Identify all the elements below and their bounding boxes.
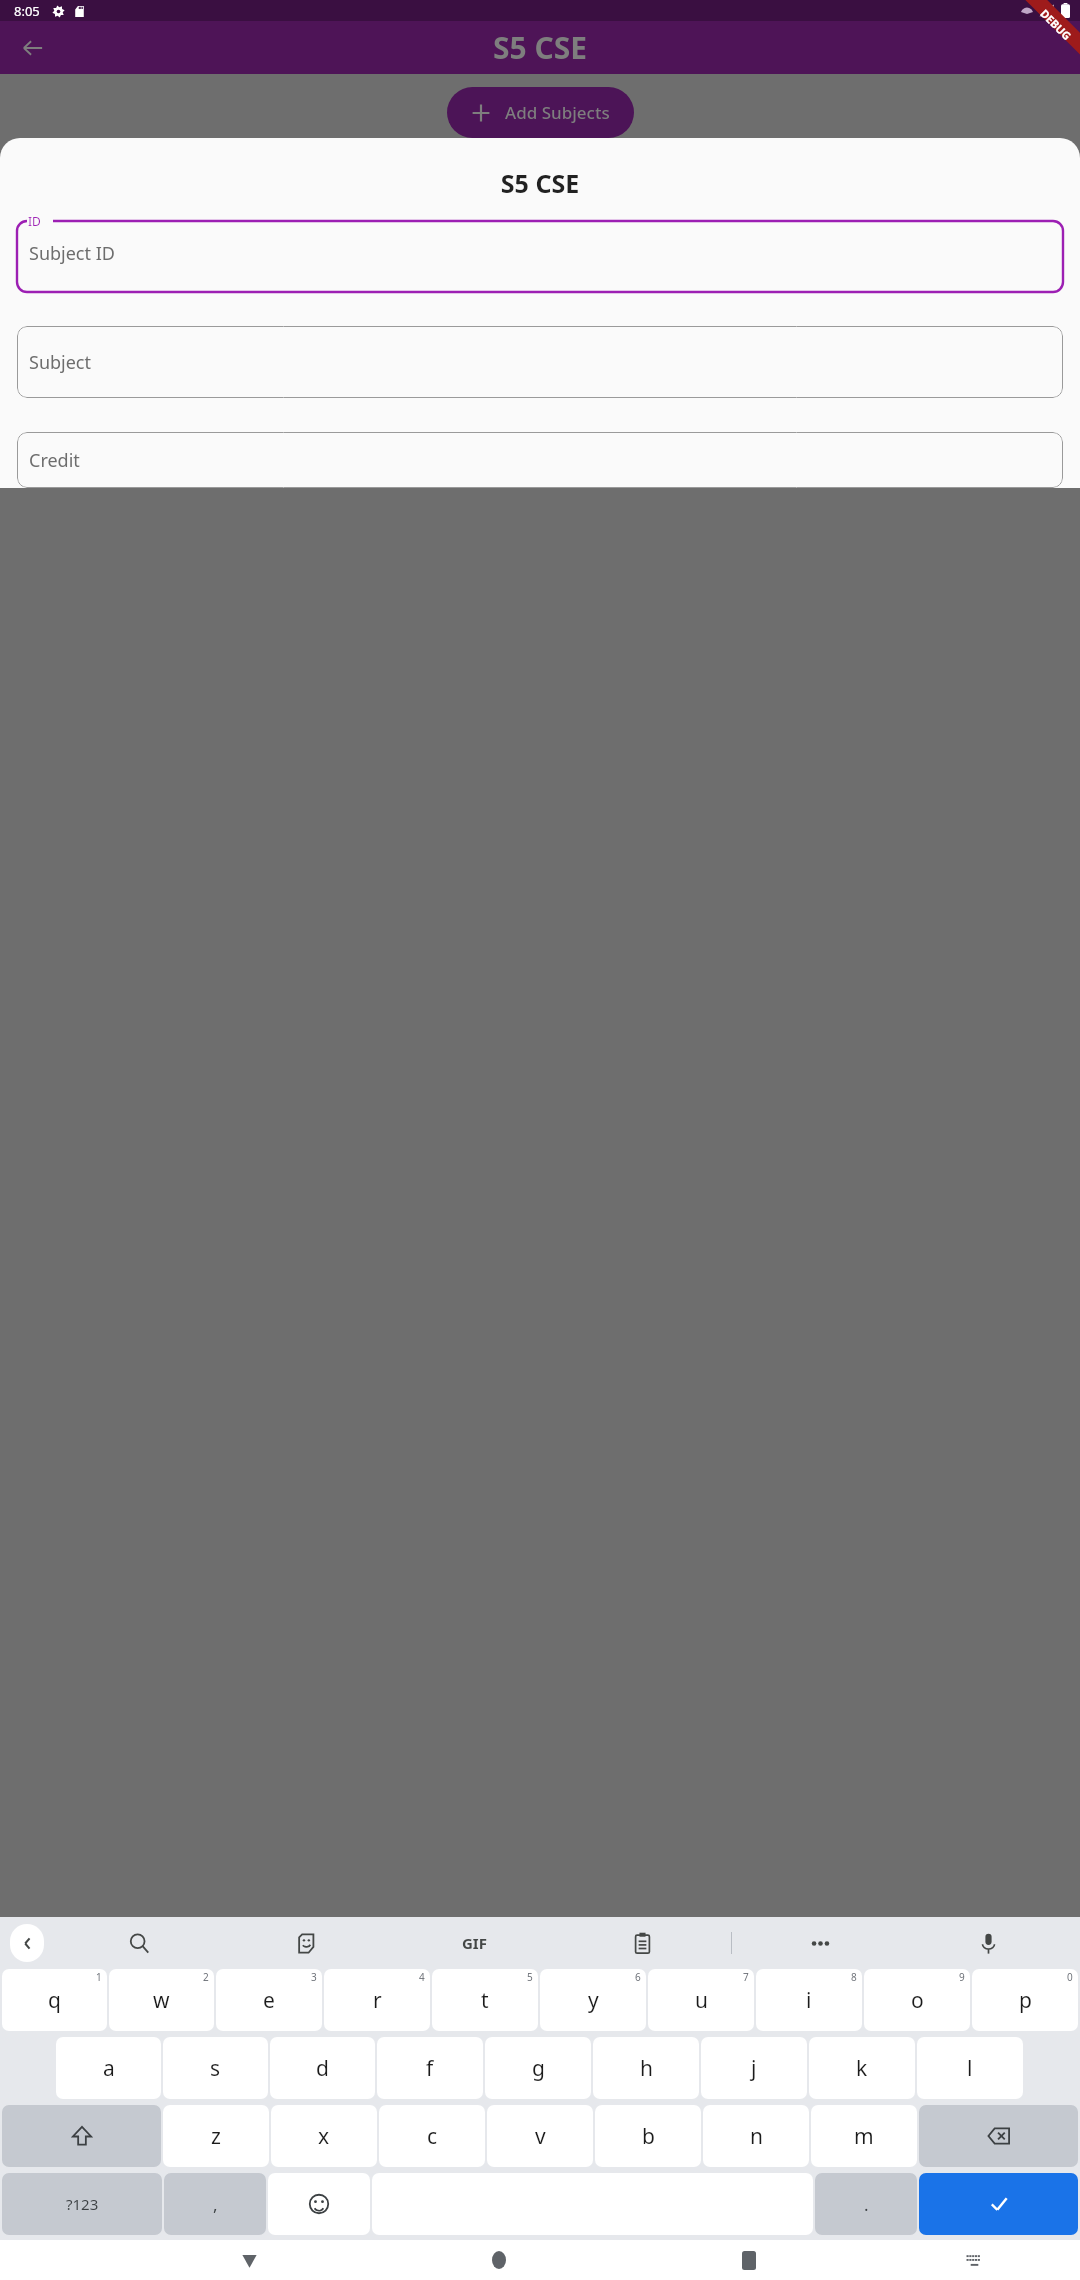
staticText: o — [911, 1986, 924, 2015]
staticText: k — [856, 2054, 868, 2083]
button[interactable]: ID — [17, 214, 1063, 292]
staticText: 8:05 — [14, 2, 40, 20]
button[interactable]: w — [109, 1969, 214, 2031]
button[interactable]: Voice input — [904, 1917, 1072, 1969]
button[interactable]: Switch keyboard — [874, 2240, 1074, 2280]
button[interactable]: a — [56, 2037, 161, 2099]
button[interactable]: p — [972, 1969, 1078, 2031]
button[interactable]: r — [324, 1969, 430, 2031]
button[interactable]: m — [811, 2105, 917, 2167]
button[interactable]: Add Subjects — [447, 87, 634, 138]
button[interactable]: Clipboard — [558, 1917, 726, 1969]
staticText: y — [588, 1986, 599, 2015]
button[interactable]: q — [2, 1969, 107, 2031]
staticText: 4 — [419, 1970, 425, 1984]
button[interactable]: Stickers — [223, 1917, 390, 1969]
button[interactable]: , — [164, 2173, 266, 2235]
staticText: s — [210, 2054, 221, 2083]
button[interactable]: l — [917, 2037, 1023, 2099]
button[interactable]: Credit — [17, 432, 1063, 488]
staticText: q — [48, 1986, 61, 2015]
staticText: a — [103, 2054, 115, 2083]
staticText: i — [806, 1986, 812, 2015]
staticText: 2 — [203, 1970, 209, 1984]
staticText: z — [211, 2122, 221, 2151]
button[interactable]: Back — [10, 25, 56, 71]
button[interactable]: Backspace — [919, 2105, 1078, 2167]
staticText: m — [854, 2122, 874, 2151]
button[interactable]: o — [864, 1969, 970, 2031]
staticText: Add Subjects — [505, 101, 610, 124]
button[interactable]: g — [485, 2037, 591, 2099]
button[interactable]: Emoji — [268, 2173, 370, 2235]
staticText: 0 — [1067, 1970, 1073, 1984]
button[interactable]: Home — [374, 2240, 624, 2280]
button[interactable]: b — [595, 2105, 701, 2167]
staticText: t — [481, 1986, 489, 2015]
staticText: j — [751, 2054, 757, 2083]
button[interactable]: . — [815, 2173, 917, 2235]
button[interactable]: x — [271, 2105, 377, 2167]
staticText: S5 CSE — [0, 166, 1080, 200]
staticText: n — [750, 2122, 763, 2151]
staticText: . — [864, 2193, 869, 2216]
staticText: GIF — [462, 1933, 487, 1953]
staticText: 6 — [635, 1970, 641, 1984]
staticText: e — [263, 1986, 275, 2015]
staticText: 1 — [96, 1970, 102, 1984]
button[interactable]: Expand toolbar — [10, 1924, 44, 1962]
button[interactable]: v — [487, 2105, 593, 2167]
staticText: ID — [28, 213, 41, 229]
staticText: g — [532, 2054, 545, 2083]
staticText: l — [967, 2054, 973, 2083]
button[interactable]: k — [809, 2037, 915, 2099]
button[interactable]: Search — [56, 1917, 223, 1969]
button[interactable]: GIF — [390, 1917, 558, 1969]
staticText: Subject — [29, 350, 92, 375]
button[interactable]: f — [377, 2037, 483, 2099]
staticText: p — [1019, 1986, 1032, 2015]
staticText: c — [427, 2122, 438, 2151]
staticText: 8 — [851, 1970, 857, 1984]
button[interactable]: More options — [736, 1917, 904, 1969]
staticText: u — [695, 1986, 708, 2015]
staticText: r — [373, 1986, 382, 2015]
staticText: ?123 — [66, 2194, 99, 2214]
staticText: 7 — [743, 1970, 749, 1984]
staticText: h — [640, 2054, 653, 2083]
button[interactable]: Enter — [919, 2173, 1078, 2235]
button[interactable]: i — [756, 1969, 862, 2031]
button[interactable]: ?123 — [2, 2173, 162, 2235]
staticText: , — [213, 2193, 218, 2216]
staticText: b — [642, 2122, 655, 2151]
button[interactable]: u — [648, 1969, 754, 2031]
button[interactable]: t — [432, 1969, 538, 2031]
staticText: x — [318, 2122, 330, 2151]
button[interactable]: c — [379, 2105, 485, 2167]
button[interactable]: y — [540, 1969, 646, 2031]
staticText: 5 — [527, 1970, 533, 1984]
staticText: Subject ID — [29, 241, 115, 266]
button[interactable]: Subject — [17, 326, 1063, 398]
staticText: Credit — [29, 448, 80, 473]
button[interactable]: n — [703, 2105, 809, 2167]
button[interactable]: j — [701, 2037, 807, 2099]
button[interactable]: Shift — [2, 2105, 161, 2167]
staticText: S5 CSE — [493, 27, 588, 68]
button[interactable]: e — [216, 1969, 322, 2031]
staticText: 9 — [959, 1970, 965, 1984]
staticText: d — [316, 2054, 329, 2083]
button[interactable]: h — [593, 2037, 699, 2099]
staticText: 3 — [311, 1970, 317, 1984]
button[interactable]: Back — [124, 2240, 374, 2280]
staticText: v — [535, 2122, 546, 2151]
staticText: w — [153, 1986, 170, 2015]
staticText: f — [426, 2054, 434, 2083]
staticText: DEBUG — [1037, 6, 1075, 43]
button[interactable]: Recents — [624, 2240, 874, 2280]
button[interactable]: s — [163, 2037, 268, 2099]
button[interactable]: z — [163, 2105, 269, 2167]
button[interactable]: d — [270, 2037, 375, 2099]
